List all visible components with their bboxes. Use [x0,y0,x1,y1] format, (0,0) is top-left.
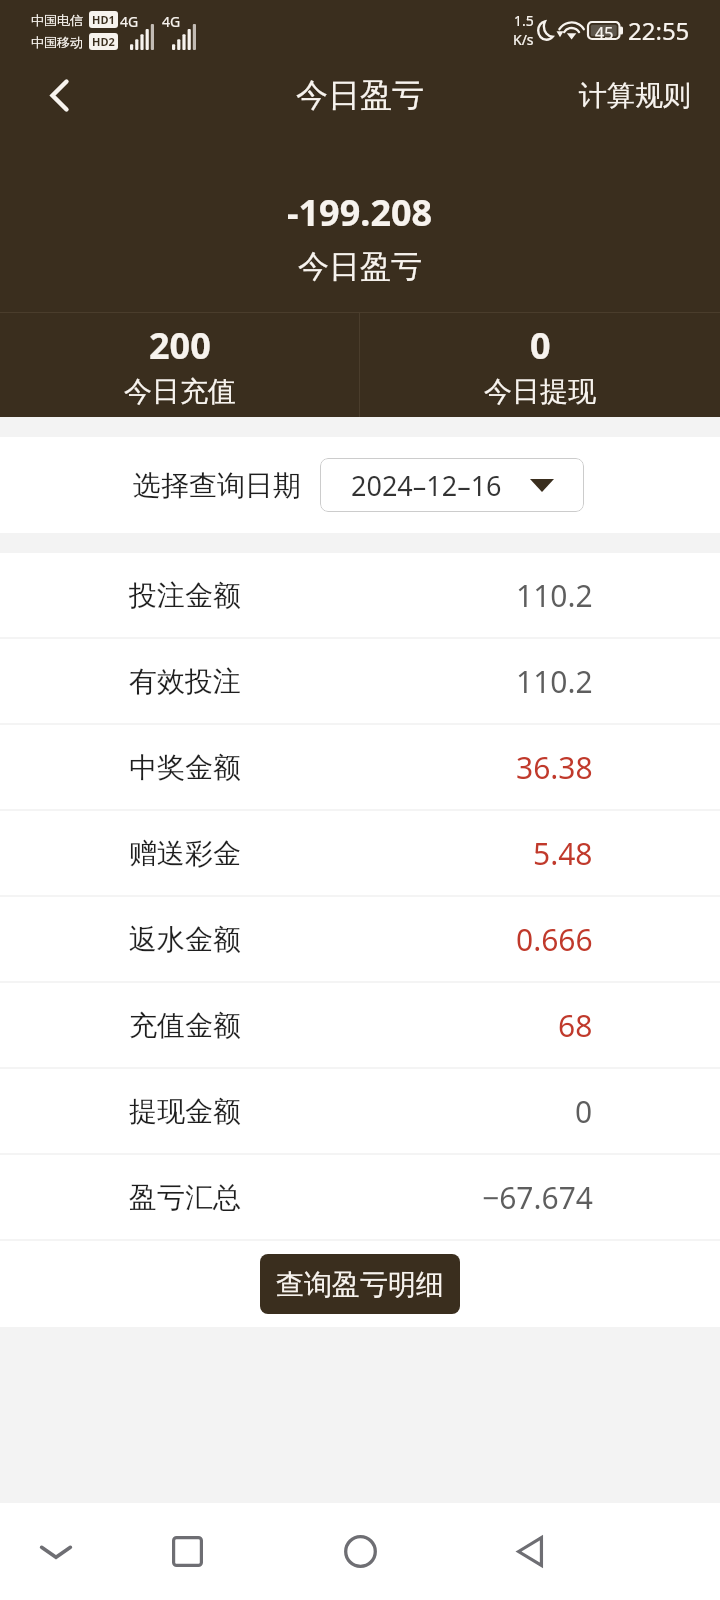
button[interactable]: 计算规则 [563,60,720,130]
button[interactable]: 提现金额 [0,1069,720,1153]
staticText: 计算规则 [579,78,691,113]
staticText: 投注金额 [129,578,241,613]
staticText: 今日充值 [124,374,236,409]
staticText: 5.48 [533,833,593,874]
staticText: 查询盈亏明细 [276,1267,444,1302]
button[interactable]: Home [312,1503,408,1600]
staticText: 4G [162,12,181,31]
staticText: -199.208 [287,188,433,237]
staticText: 赠送彩金 [129,836,241,871]
staticText: 中国电信 [31,12,83,28]
button[interactable]: 0 [360,313,720,417]
staticText: 中奖金额 [129,750,241,785]
button[interactable]: 中奖金额 [0,725,720,809]
staticText: 今日提现 [484,374,596,409]
button[interactable]: 查询盈亏明细 [260,1254,460,1314]
button[interactable]: Hide keyboard [8,1503,104,1600]
staticText: 36.38 [516,747,593,788]
staticText: 今日盈亏 [298,247,422,286]
button[interactable]: Back [482,1503,578,1600]
button[interactable]: 充值金额 [0,983,720,1067]
button[interactable]: 返水金额 [0,897,720,981]
button[interactable]: 有效投注 [0,639,720,723]
staticText: 45 [595,22,614,39]
staticText: 22:55 [628,14,690,47]
button[interactable]: 盈亏汇总 [0,1155,720,1239]
staticText: 110.2 [516,575,593,616]
staticText: 68 [558,1005,593,1046]
staticText: 充值金额 [129,1008,241,1043]
staticText: 1.5 [514,11,534,30]
staticText: 今日盈亏 [296,75,424,115]
staticText: 2024–12–16 [351,467,502,504]
staticText: 盈亏汇总 [129,1180,241,1215]
staticText: 0 [575,1091,593,1132]
staticText: 提现金额 [129,1094,241,1129]
staticText: 0 [530,321,551,370]
staticText: 200 [149,321,211,370]
button[interactable]: 投注金额 [0,553,720,637]
staticText: 中国移动 [31,34,83,50]
staticText: 110.2 [516,661,593,702]
staticText: −67.674 [482,1177,593,1218]
button[interactable]: 2024–12–16 [320,458,584,512]
staticText: 选择查询日期 [133,468,301,503]
button[interactable]: 赠送彩金 [0,811,720,895]
staticText: 有效投注 [129,664,241,699]
staticText: HD1 [92,12,115,27]
staticText: 4G [120,12,139,31]
staticText: 返水金额 [129,922,241,957]
staticText: 0.666 [516,919,593,960]
button[interactable]: 200 [0,313,359,417]
button[interactable]: Back [0,60,110,130]
button[interactable]: Recent apps [139,1503,235,1600]
staticText: K/s [513,30,534,49]
staticText: HD2 [92,34,115,49]
